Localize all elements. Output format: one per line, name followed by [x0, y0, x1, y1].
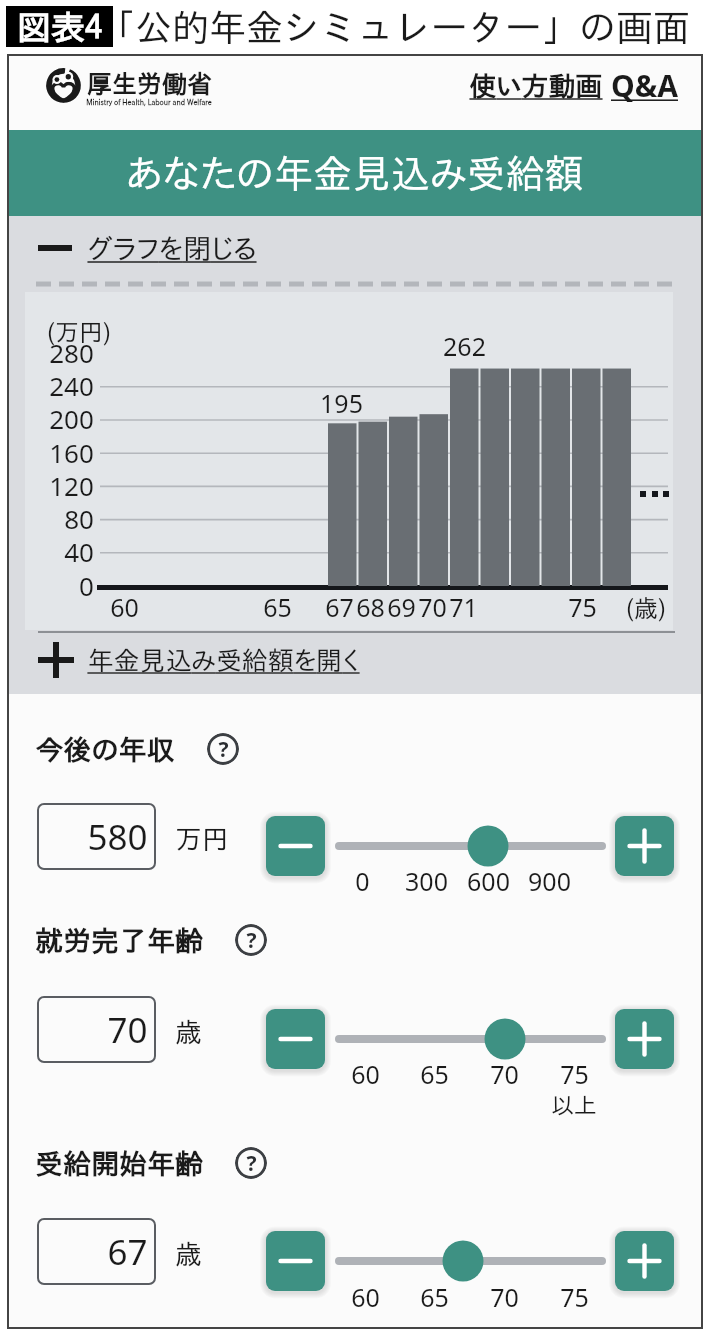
staticText: 300: [405, 864, 448, 898]
staticText: 0: [355, 864, 370, 898]
button[interactable]: 就労完了年齢 slider: [335, 1013, 607, 1065]
button[interactable]: Q&A: [611, 64, 678, 106]
button[interactable]: Help: 受給開始年齢: [235, 1147, 267, 1179]
staticText: 図表4: [17, 10, 102, 44]
staticText: 60: [351, 1057, 380, 1091]
staticText: 60: [110, 590, 139, 624]
staticText: 厚生労働省: [87, 71, 212, 96]
staticText: 71: [449, 590, 478, 624]
staticText: 75: [560, 1057, 589, 1091]
staticText: 240: [49, 368, 94, 403]
button[interactable]: Decrease 就労完了年齢: [260, 1003, 332, 1075]
staticText: 69: [387, 590, 416, 624]
staticText: 70: [490, 1280, 519, 1314]
staticText: 歳: [175, 1240, 202, 1267]
button[interactable]: 年金見込み受給額を開く: [38, 638, 360, 682]
button[interactable]: Increase 就労完了年齢: [609, 1003, 681, 1075]
staticText: 60: [351, 1280, 380, 1314]
staticText: (歳): [626, 596, 666, 620]
staticText: グラフを閉じる: [87, 234, 257, 262]
staticText: 900: [528, 864, 571, 898]
staticText: 70: [490, 1057, 519, 1091]
button[interactable]: 使い方動画: [469, 64, 603, 106]
staticText: Ministry of Health, Labour and Welfare: [86, 99, 212, 106]
staticText: 65: [263, 590, 292, 624]
button[interactable]: 就労完了年齢: [35, 916, 203, 964]
staticText: 以上: [551, 1094, 597, 1117]
staticText: 70: [107, 1006, 148, 1054]
staticText: 70: [418, 590, 447, 624]
staticText: 280: [49, 335, 94, 370]
staticText: 80: [64, 501, 94, 536]
staticText: 40: [64, 534, 94, 569]
staticText: 68: [356, 590, 385, 624]
staticText: 0: [79, 568, 94, 603]
staticText: 就労完了年齢: [35, 926, 203, 954]
staticText: ?: [218, 735, 229, 764]
staticText: 受給開始年齢: [35, 1149, 203, 1177]
staticText: 歳: [175, 1018, 202, 1045]
staticText: 160: [49, 435, 94, 470]
button[interactable]: 受給開始年齢 slider: [335, 1235, 607, 1287]
button[interactable]: Decrease 受給開始年齢: [260, 1225, 332, 1297]
staticText: 200: [49, 401, 94, 436]
staticText: 今後の年収: [35, 735, 175, 763]
staticText: (万円): [47, 320, 111, 344]
staticText: ?: [246, 926, 257, 955]
staticText: 67: [107, 1228, 148, 1276]
staticText: 195: [320, 386, 363, 420]
staticText: 75: [568, 590, 597, 624]
button[interactable]: 67: [37, 1218, 148, 1285]
staticText: 万円: [175, 825, 229, 852]
staticText: 600: [467, 864, 510, 898]
button[interactable]: Help: 就労完了年齢: [235, 924, 267, 956]
staticText: 67: [325, 590, 354, 624]
button[interactable]: 70: [37, 996, 148, 1063]
staticText: あなたの年金見込み受給額: [126, 154, 584, 193]
staticText: 580: [87, 813, 148, 861]
button[interactable]: Help: 今後の年収: [207, 733, 239, 765]
button[interactable]: グラフを閉じる: [38, 227, 257, 269]
staticText: ?: [246, 1149, 257, 1178]
staticText: 65: [420, 1057, 449, 1091]
button[interactable]: 今後の年収: [35, 725, 175, 773]
staticText: 使い方動画: [469, 72, 603, 99]
button[interactable]: 580: [37, 803, 148, 870]
staticText: 「公的年金シミュレーター」の画面: [98, 8, 690, 45]
button[interactable]: Increase 受給開始年齢: [609, 1225, 681, 1297]
staticText: 年金見込み受給額を開く: [87, 647, 360, 673]
staticText: 75: [560, 1280, 589, 1314]
staticText: 65: [420, 1280, 449, 1314]
button[interactable]: 今後の年収 slider: [335, 820, 607, 872]
button[interactable]: Decrease 今後の年収: [260, 810, 332, 882]
staticText: 120: [49, 468, 94, 503]
staticText: 262: [443, 329, 486, 363]
button[interactable]: Increase 今後の年収: [609, 810, 681, 882]
button[interactable]: 受給開始年齢: [35, 1139, 203, 1187]
staticText: Q&A: [611, 65, 678, 106]
